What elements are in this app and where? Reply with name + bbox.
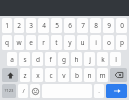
button[interactable]: d — [32, 52, 43, 66]
button[interactable]: j — [84, 52, 95, 66]
button[interactable]: Backspace — [110, 68, 127, 82]
button[interactable]: 6 — [64, 18, 75, 33]
staticText: 9 — [107, 21, 111, 30]
staticText: o — [107, 38, 111, 47]
staticText: b — [75, 71, 79, 80]
staticText: 2 — [17, 21, 21, 30]
button[interactable]: v — [58, 68, 69, 82]
button[interactable]: z — [20, 68, 30, 82]
staticText: z — [23, 71, 27, 80]
staticText: 7 — [81, 21, 85, 30]
button[interactable]: n — [84, 68, 95, 82]
staticText: 3 — [29, 21, 33, 30]
staticText: s — [23, 55, 27, 64]
button[interactable]: 7 — [77, 18, 88, 33]
button[interactable]: Enter — [106, 84, 127, 98]
staticText: u — [80, 38, 85, 47]
staticText: q — [5, 38, 9, 47]
staticText: 5 — [55, 21, 59, 30]
staticText: p — [120, 38, 124, 47]
button[interactable]: b — [71, 68, 82, 82]
button[interactable]: c — [45, 68, 56, 82]
button[interactable]: w — [14, 35, 24, 50]
staticText: 8 — [94, 21, 98, 30]
button[interactable]: y — [64, 35, 75, 50]
button[interactable]: / — [18, 84, 28, 98]
button[interactable]: p — [116, 35, 127, 50]
staticText: y — [68, 38, 72, 47]
button[interactable]: m — [97, 68, 108, 82]
staticText: l — [115, 55, 117, 64]
staticText: e — [29, 38, 33, 47]
staticText: 4 — [42, 21, 46, 30]
staticText: x — [36, 71, 40, 80]
button[interactable]: 2 — [14, 18, 24, 33]
staticText: c — [49, 71, 53, 80]
staticText: d — [36, 55, 40, 64]
staticText: t — [55, 38, 58, 47]
staticText: m — [99, 71, 106, 80]
staticText: r — [42, 38, 45, 47]
button[interactable]: 9 — [103, 18, 114, 33]
button[interactable]: e — [26, 35, 36, 50]
staticText: k — [101, 55, 105, 64]
staticText: n — [87, 71, 92, 80]
staticText: 0 — [120, 21, 124, 30]
button[interactable]: g — [58, 52, 69, 66]
button[interactable]: 0 — [116, 18, 127, 33]
button[interactable]: u — [77, 35, 88, 50]
staticText: f — [49, 55, 52, 64]
staticText: v — [62, 71, 66, 80]
staticText: j — [89, 55, 91, 64]
button[interactable]: 5 — [51, 18, 62, 33]
staticText: . — [98, 87, 100, 95]
button[interactable]: i — [90, 35, 101, 50]
staticText: i — [95, 38, 97, 47]
button[interactable]: l — [110, 52, 121, 66]
button[interactable]: Shift — [2, 68, 18, 82]
staticText: ?123 — [4, 88, 14, 94]
button[interactable]: q — [2, 35, 12, 50]
button[interactable]: 8 — [90, 18, 101, 33]
button[interactable]: o — [103, 35, 114, 50]
button[interactable]: s — [19, 52, 30, 66]
button[interactable]: k — [97, 52, 108, 66]
staticText: / — [22, 87, 25, 95]
button[interactable]: 4 — [38, 18, 49, 33]
button[interactable]: Emoji — [30, 84, 40, 98]
staticText: w — [16, 38, 22, 47]
button[interactable]: . — [94, 84, 104, 98]
button[interactable]: 1 — [2, 18, 12, 33]
button[interactable]: a — [7, 52, 17, 66]
button[interactable]: t — [51, 35, 62, 50]
button[interactable]: 3 — [26, 18, 36, 33]
button[interactable]: x — [32, 68, 43, 82]
staticText: 1 — [5, 21, 9, 30]
button[interactable]: ?123 — [2, 84, 16, 98]
staticText: 6 — [68, 21, 72, 30]
button[interactable]: r — [38, 35, 49, 50]
button[interactable]: h — [71, 52, 82, 66]
staticText: h — [74, 55, 79, 64]
button[interactable]: f — [45, 52, 56, 66]
staticText: g — [62, 55, 66, 64]
staticText: a — [10, 55, 14, 64]
